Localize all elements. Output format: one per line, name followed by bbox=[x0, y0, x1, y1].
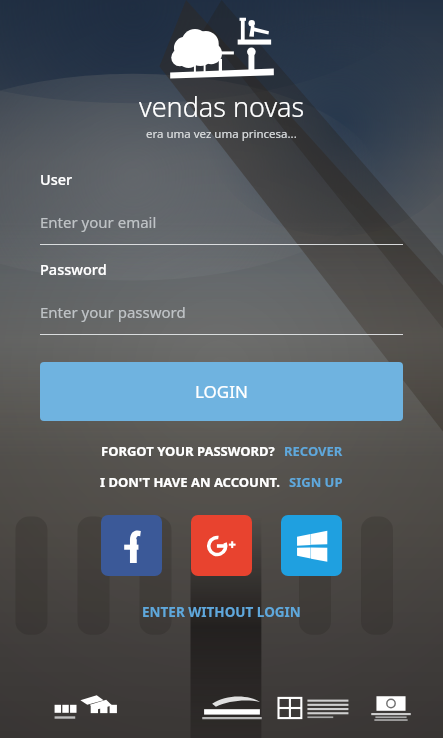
staticText: Enter your password bbox=[40, 302, 186, 322]
button[interactable]: LOGIN bbox=[40, 362, 403, 421]
staticText: LOGIN bbox=[195, 380, 248, 403]
staticText: RECOVER bbox=[284, 442, 343, 460]
staticText: I DON'T HAVE AN ACCOUNT. bbox=[100, 473, 280, 491]
button[interactable]: Sign in with Microsoft bbox=[281, 515, 342, 576]
staticText: FORGOT YOUR PASSWORD? bbox=[101, 442, 275, 460]
staticText: Password bbox=[40, 259, 107, 279]
button[interactable]: RECOVER bbox=[284, 442, 343, 460]
staticText: era uma vez uma princesa... bbox=[146, 126, 297, 142]
button[interactable]: Enter your email bbox=[40, 209, 403, 235]
button[interactable]: Sign in with Facebook bbox=[101, 515, 162, 576]
button[interactable]: SIGN UP bbox=[289, 473, 343, 491]
staticText: ENTER WITHOUT LOGIN bbox=[142, 603, 301, 621]
staticText: SIGN UP bbox=[289, 473, 343, 491]
button[interactable]: Sign in with Google bbox=[191, 515, 252, 576]
staticText: Enter your email bbox=[40, 212, 157, 232]
button[interactable]: ENTER WITHOUT LOGIN bbox=[134, 599, 309, 625]
button[interactable]: Enter your password bbox=[40, 299, 403, 325]
staticText: vendas novas bbox=[139, 88, 305, 125]
staticText: User bbox=[40, 169, 73, 189]
